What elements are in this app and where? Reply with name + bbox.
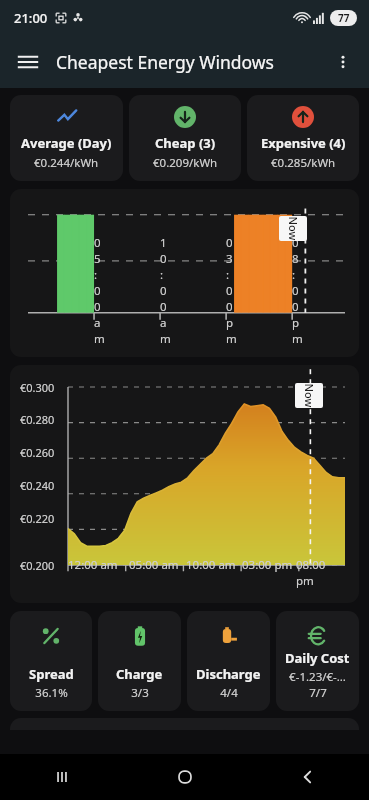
staticText: 05:00 am [129, 557, 179, 573]
staticText: 08:00 pm [296, 557, 345, 589]
button[interactable]: Discharge [187, 611, 270, 711]
button[interactable]: Cheap (3) [129, 95, 241, 181]
button[interactable]: Back [246, 754, 369, 800]
staticText: 77 [338, 11, 350, 25]
staticText: Cheap (3) [155, 134, 216, 152]
button[interactable]: Expensive (4) [247, 95, 359, 181]
staticText: €0.260 [20, 445, 55, 459]
staticText: €0.300 [20, 380, 55, 394]
staticText: €0.209/kWh [153, 155, 218, 171]
staticText: 36.1% [35, 685, 68, 701]
staticText: 12:00 am [68, 557, 118, 573]
staticText: €0.280 [20, 412, 55, 426]
staticText: Charge [116, 665, 163, 683]
staticText: €0.244/kWh [34, 155, 99, 171]
button[interactable]: €0.300 [10, 365, 359, 603]
staticText: €-1.23/€-… [289, 669, 346, 685]
staticText: 10:00 am [186, 557, 236, 573]
staticText: 21:00 [14, 9, 48, 27]
button[interactable]: More options [323, 42, 363, 82]
staticText: Cheapest Energy Windows [56, 50, 274, 74]
staticText: €0.285/kWh [271, 155, 336, 171]
staticText: 4/4 [220, 685, 238, 701]
button[interactable]: Charge [98, 611, 181, 711]
button[interactable]: Spread [10, 611, 92, 711]
staticText: 3/3 [131, 685, 149, 701]
staticText: 7/7 [309, 685, 327, 701]
staticText: €0.220 [20, 511, 55, 525]
staticText: Discharge [196, 665, 261, 683]
button[interactable]: Home [123, 754, 246, 800]
staticText: Now [301, 383, 316, 407]
button[interactable]: Menu [8, 42, 48, 82]
button[interactable]: Average (Day) [10, 95, 123, 181]
staticText: Expensive (4) [261, 134, 346, 152]
staticText: 03:00 pm [242, 557, 293, 573]
staticText: Now [285, 216, 300, 240]
staticText: €0.240 [20, 478, 55, 492]
button[interactable]: Recent apps [0, 754, 123, 800]
staticText: €0.200 [20, 558, 55, 572]
staticText: Spread [29, 665, 74, 683]
button[interactable]: Daily Cost [276, 611, 359, 711]
staticText: Daily Cost [285, 649, 350, 667]
button[interactable]: 05:00 am [10, 189, 359, 357]
staticText: Average (Day) [21, 134, 112, 152]
